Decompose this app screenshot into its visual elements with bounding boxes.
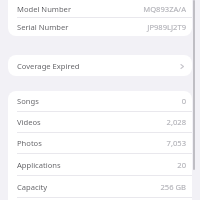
staticText: Photos	[17, 138, 42, 148]
button[interactable]: Photos	[8, 133, 192, 153]
button[interactable]: Serial Number	[8, 18, 192, 36]
staticText: Coverage Expired	[17, 61, 80, 71]
staticText: Applications	[17, 160, 61, 170]
staticText: Serial Number	[17, 22, 69, 32]
staticText: Capacity	[17, 182, 48, 192]
button[interactable]: Model Number	[8, 0, 192, 17]
staticText: 7,053	[166, 138, 186, 148]
staticText: Videos	[17, 117, 41, 127]
button[interactable]: Applications	[8, 154, 192, 175]
button[interactable]: Coverage Expired	[8, 55, 192, 76]
staticText: 0	[181, 96, 186, 106]
staticText: 2,028	[166, 117, 186, 127]
staticText: Model Number	[17, 4, 72, 14]
staticText: 20	[177, 160, 186, 170]
staticText: JP989LJ2T9	[147, 22, 186, 32]
button[interactable]: Capacity	[8, 176, 192, 197]
staticText: Songs	[17, 96, 39, 106]
staticText: 256 GB	[160, 182, 186, 192]
button[interactable]: Songs	[8, 91, 192, 111]
button[interactable]: Videos	[8, 112, 192, 132]
staticText: MQ893ZA/A	[143, 4, 186, 14]
